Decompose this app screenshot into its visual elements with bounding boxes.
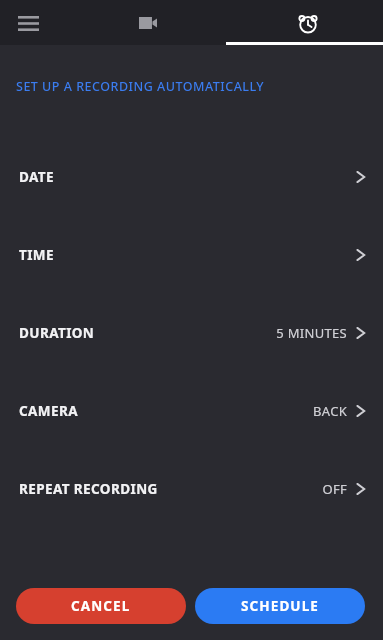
button[interactable]: CAMERA xyxy=(0,372,383,450)
staticText: BACK xyxy=(313,402,347,420)
staticText: REPEAT RECORDING xyxy=(19,480,158,498)
button[interactable]: Schedule tab xyxy=(284,0,332,45)
staticText: CANCEL xyxy=(71,597,131,615)
staticText: 5 MINUTES xyxy=(276,324,347,342)
button[interactable]: Menu xyxy=(8,3,48,43)
staticText: DATE xyxy=(19,168,54,186)
staticText: SCHEDULE xyxy=(241,597,319,615)
staticText: TIME xyxy=(19,246,54,264)
button[interactable]: TIME xyxy=(0,216,383,294)
button[interactable]: DURATION xyxy=(0,294,383,372)
staticText: CAMERA xyxy=(19,402,78,420)
button[interactable]: CANCEL xyxy=(16,588,186,624)
button[interactable]: REPEAT RECORDING xyxy=(0,450,383,528)
staticText: DURATION xyxy=(19,324,95,342)
button[interactable]: Camera tab xyxy=(124,0,172,45)
button[interactable]: SCHEDULE xyxy=(195,588,365,624)
staticText: OFF xyxy=(322,480,347,498)
staticText: SET UP A RECORDING AUTOMATICALLY xyxy=(16,78,265,95)
button[interactable]: DATE xyxy=(0,138,383,216)
